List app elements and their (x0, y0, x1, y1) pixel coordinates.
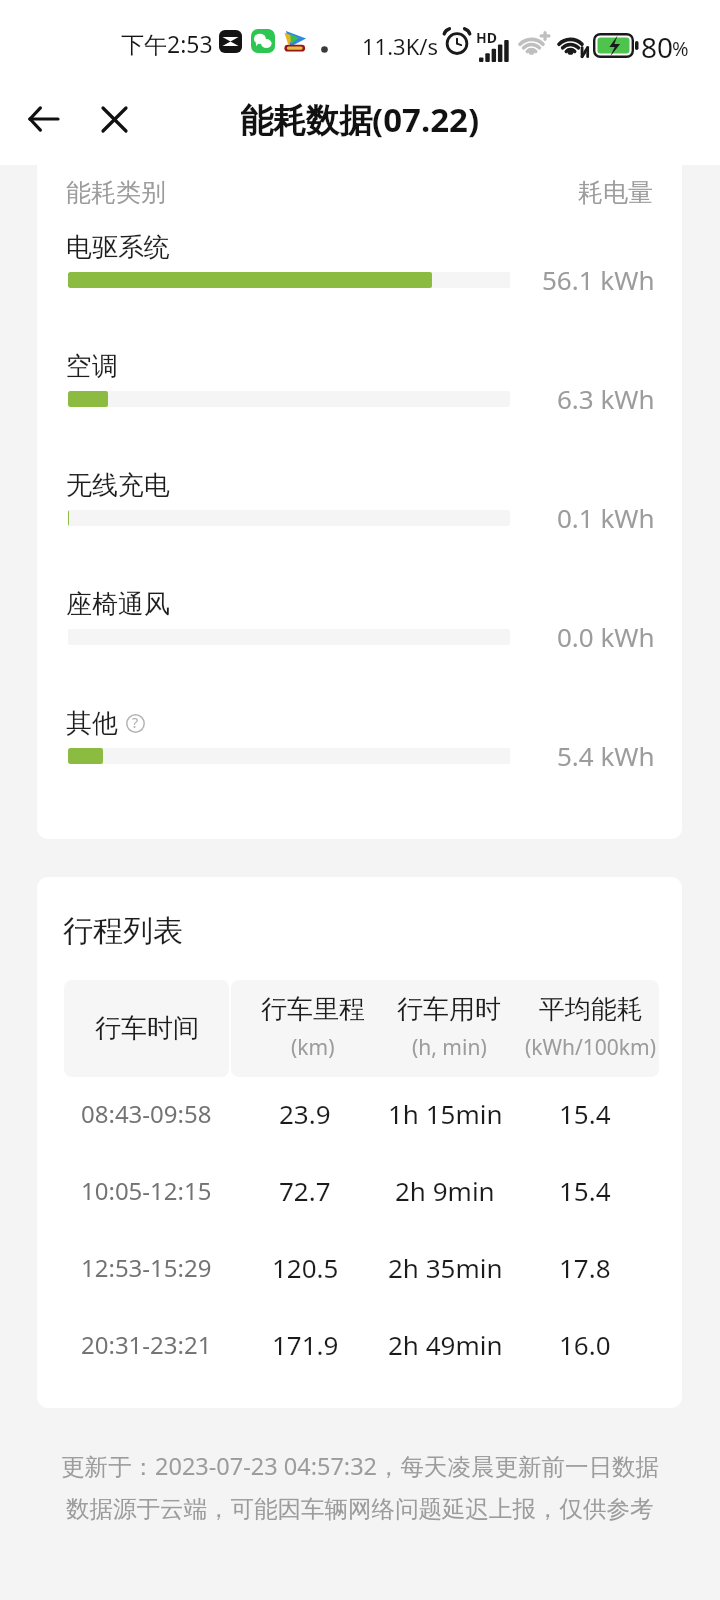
staticText: 08:43-09:58 (81, 1097, 212, 1130)
staticText: 行车里程 (261, 993, 365, 1026)
staticText: 行程列表 (63, 912, 183, 950)
button[interactable]: Back (16, 91, 72, 147)
button[interactable]: 12:53-15:29 (37, 1229, 682, 1306)
staticText: 80 (641, 28, 674, 66)
staticText: 数据源于云端，可能因车辆网络问题延迟上报，仅供参考 (66, 1494, 654, 1524)
button[interactable]: 10:05-12:15 (37, 1152, 682, 1229)
button[interactable]: 无线充电 (66, 469, 653, 537)
staticText: 10:05-12:15 (81, 1174, 212, 1207)
button[interactable]: 其他 (66, 707, 653, 775)
staticText: (h, min) (412, 1033, 487, 1062)
staticText: 平均能耗 (539, 993, 643, 1026)
staticText: 0.0 kWh (557, 619, 655, 654)
button[interactable]: 20:31-23:21 (37, 1306, 682, 1383)
staticText: 其他 (66, 707, 118, 740)
button[interactable]: 行车时间 (64, 980, 229, 1077)
staticText: 无线充电 (66, 469, 170, 502)
staticText: 72.7 (279, 1173, 331, 1208)
button[interactable]: More information (126, 714, 145, 733)
staticText: 17.8 (559, 1250, 611, 1285)
staticText: 0.1 kWh (557, 500, 655, 535)
staticText: 2h 35min (388, 1250, 503, 1285)
button[interactable]: 空调 (66, 350, 653, 418)
staticText: % (672, 35, 689, 62)
staticText: 16.0 (559, 1327, 611, 1362)
button[interactable]: 08:43-09:58 (37, 1075, 682, 1152)
staticText: 2h 9min (395, 1173, 495, 1208)
staticText: 空调 (66, 350, 118, 383)
button[interactable]: 电驱系统 (66, 231, 653, 299)
staticText: 下午2:53 (121, 28, 213, 59)
staticText: 电驱系统 (66, 231, 170, 264)
staticText: 更新于：2023-07-23 04:57:32，每天凌晨更新前一日数据 (61, 1450, 660, 1482)
staticText: 120.5 (272, 1250, 339, 1285)
staticText: 12:53-15:29 (81, 1251, 212, 1284)
staticText: 15.4 (559, 1173, 611, 1208)
staticText: 2h 49min (388, 1327, 503, 1362)
staticText: 座椅通风 (66, 588, 170, 621)
staticText: 23.9 (279, 1096, 331, 1131)
staticText: ? (132, 713, 139, 732)
staticText: 5.4 kWh (557, 738, 655, 773)
staticText: 20:31-23:21 (81, 1328, 212, 1361)
staticText: (km) (291, 1033, 335, 1062)
button[interactable]: 座椅通风 (66, 588, 653, 656)
staticText: 1h 15min (388, 1096, 503, 1131)
staticText: 能耗数据(07.22) (240, 97, 480, 142)
staticText: 11.3K/s (362, 31, 438, 61)
staticText: HD (476, 28, 497, 47)
button[interactable]: Close (86, 91, 142, 147)
staticText: 6.3 kWh (557, 381, 655, 416)
staticText: 15.4 (559, 1096, 611, 1131)
staticText: (kWh/100km) (525, 1033, 657, 1062)
staticText: 行车时间 (95, 1012, 199, 1045)
staticText: 56.1 kWh (542, 262, 655, 297)
staticText: 耗电量 (578, 177, 653, 208)
staticText: 171.9 (272, 1327, 339, 1362)
staticText: 能耗类别 (66, 177, 166, 208)
staticText: 行车用时 (397, 993, 501, 1026)
